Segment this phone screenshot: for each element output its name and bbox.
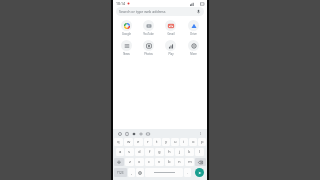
button[interactable]: i <box>180 138 188 146</box>
button[interactable]: v <box>155 158 164 166</box>
button[interactable]: Send <box>195 168 204 177</box>
staticText: Gmail <box>167 32 175 36</box>
button[interactable]: r <box>144 138 152 146</box>
staticText: YouTube <box>143 32 154 36</box>
button[interactable]: b <box>165 158 174 166</box>
button[interactable]: s <box>125 148 134 156</box>
button[interactable]: n <box>175 158 184 166</box>
staticText: q <box>117 139 120 145</box>
button[interactable]: k <box>185 148 194 156</box>
staticText: o <box>192 139 195 145</box>
staticText: i <box>183 139 185 145</box>
button[interactable]: g <box>155 148 164 156</box>
button[interactable]: Backspace <box>195 158 206 166</box>
staticText: Photos <box>144 52 153 56</box>
button[interactable]: Photos <box>137 39 159 57</box>
staticText: Search or type web address <box>119 9 196 14</box>
staticText: z <box>129 159 131 165</box>
button[interactable]: Clipboard <box>123 130 130 137</box>
button[interactable]: t <box>153 138 161 146</box>
staticText: u <box>174 139 177 145</box>
staticText: p <box>201 139 204 145</box>
button[interactable]: l <box>195 148 204 156</box>
staticText: s <box>128 149 131 155</box>
button[interactable]: d <box>135 148 144 156</box>
button[interactable]: w <box>124 138 133 146</box>
button[interactable]: u <box>171 138 179 146</box>
button[interactable]: Voice <box>116 130 123 137</box>
staticText: b <box>168 159 171 165</box>
staticText: x <box>138 159 141 165</box>
staticText: f <box>149 149 151 155</box>
staticText: l <box>199 149 201 155</box>
staticText: Google <box>122 32 131 36</box>
button[interactable]: z <box>125 158 134 166</box>
button[interactable]: Google <box>115 19 137 37</box>
staticText: e <box>137 139 140 145</box>
staticText: . <box>187 170 189 176</box>
button[interactable]: . <box>184 168 191 177</box>
button[interactable]: f <box>145 148 154 156</box>
button[interactable]: m <box>185 158 194 166</box>
button[interactable]: YouTube <box>137 19 159 37</box>
staticText: k <box>188 149 191 155</box>
staticText: r <box>147 139 149 145</box>
staticText: Drive <box>190 32 197 36</box>
staticText: c <box>148 159 151 165</box>
button[interactable]: p <box>198 138 206 146</box>
other: Voice search <box>196 9 201 14</box>
staticText: Play <box>168 52 174 56</box>
button[interactable]: Gmail <box>159 19 182 37</box>
staticText: g <box>158 149 161 155</box>
staticText: ?123 <box>117 171 124 175</box>
staticText: a <box>119 149 122 155</box>
button[interactable]: Stickers <box>130 130 137 137</box>
staticText: 10:14 <box>116 1 125 6</box>
staticText: t <box>156 139 158 145</box>
button[interactable]: x <box>135 158 144 166</box>
button[interactable]: Shift <box>114 158 124 166</box>
button[interactable]: y <box>162 138 170 146</box>
staticText: News <box>123 52 130 56</box>
button[interactable]: h <box>165 148 174 156</box>
button[interactable]: Play <box>159 39 182 57</box>
button[interactable]: Search or type web address <box>116 7 204 16</box>
button[interactable]: Emoji <box>136 168 144 177</box>
staticText: y <box>165 139 168 145</box>
button[interactable]: c <box>145 158 154 166</box>
staticText: d <box>138 149 141 155</box>
button[interactable]: Space <box>145 168 183 177</box>
button[interactable]: GIF <box>144 130 151 137</box>
button[interactable]: , <box>128 168 135 177</box>
button[interactable]: j <box>175 148 184 156</box>
staticText: v <box>158 159 161 165</box>
staticText: h <box>168 149 171 155</box>
button[interactable]: More options <box>197 130 204 137</box>
button[interactable]: More <box>182 39 205 57</box>
staticText: More <box>190 52 197 56</box>
button[interactable]: o <box>189 138 197 146</box>
button[interactable]: Drive <box>182 19 205 37</box>
staticText: m <box>188 159 192 165</box>
staticText: j <box>179 149 181 155</box>
button[interactable]: a <box>116 148 124 156</box>
button[interactable]: News <box>115 39 137 57</box>
button[interactable]: ?123 <box>114 168 127 177</box>
staticText: w <box>127 139 131 145</box>
staticText: n <box>178 159 181 165</box>
staticText: , <box>131 170 133 176</box>
button[interactable]: e <box>134 138 143 146</box>
button[interactable]: q <box>114 138 123 146</box>
button[interactable]: Translate <box>137 130 144 137</box>
